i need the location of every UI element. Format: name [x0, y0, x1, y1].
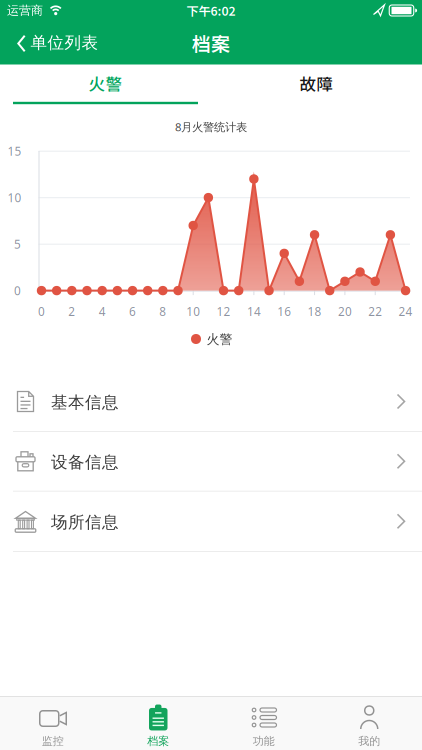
staticText: 故障 [299, 71, 333, 95]
staticText: 10 [7, 190, 21, 206]
staticText: 档案 [192, 29, 230, 56]
staticText: 4 [99, 303, 106, 319]
staticText: 8 [159, 303, 166, 319]
staticText: 2 [68, 303, 75, 319]
staticText: 档案 [147, 734, 169, 748]
staticText: 下午6:02 [186, 2, 235, 19]
staticText: 监控 [42, 734, 64, 748]
button[interactable]: 场所信息 [0, 492, 422, 551]
staticText: 我的 [358, 734, 380, 748]
staticText: 5 [14, 236, 21, 252]
staticText: 功能 [253, 734, 275, 748]
staticText: 0 [38, 303, 45, 319]
button[interactable]: 我的 [316, 696, 422, 749]
staticText: 6 [129, 303, 136, 319]
staticText: 18 [308, 303, 322, 319]
staticText: 20 [338, 303, 352, 319]
button[interactable]: 设备信息 [0, 432, 422, 491]
staticText: 单位列表 [30, 32, 98, 53]
staticText: 火警 [88, 71, 122, 95]
button[interactable]: 火警 [0, 63, 211, 103]
staticText: 22 [368, 303, 382, 319]
staticText: 基本信息 [51, 392, 119, 413]
button[interactable]: 监控 [0, 696, 105, 749]
button[interactable]: 档案 [105, 696, 211, 749]
staticText: 场所信息 [51, 512, 119, 533]
staticText: 设备信息 [51, 452, 119, 473]
staticText: 12 [216, 303, 230, 319]
staticText: 0 [14, 283, 21, 299]
button[interactable]: 基本信息 [0, 372, 422, 431]
staticText: 运营商 [7, 3, 43, 18]
staticText: 火警 [206, 331, 232, 348]
staticText: 15 [7, 143, 21, 159]
staticText: 8月火警统计表 [175, 119, 247, 134]
staticText: 14 [247, 303, 261, 319]
button[interactable]: 故障 [211, 63, 422, 103]
button[interactable]: 功能 [211, 696, 316, 749]
staticText: 16 [277, 303, 291, 319]
staticText: 24 [399, 303, 413, 319]
button[interactable]: 单位列表 [10, 27, 110, 59]
staticText: 10 [186, 303, 200, 319]
